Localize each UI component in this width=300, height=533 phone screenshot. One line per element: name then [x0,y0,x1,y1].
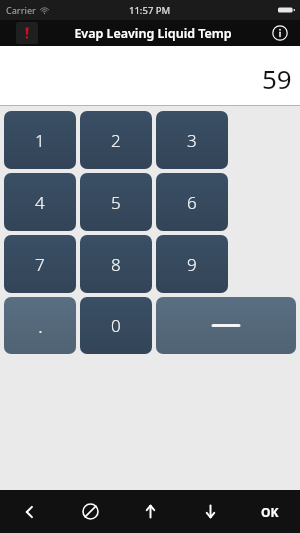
button[interactable]: Next [180,490,240,533]
staticText: 0 [111,314,121,337]
button[interactable]: 3 [156,111,228,169]
staticText: 5 [111,191,121,214]
button[interactable]: Info [268,21,292,45]
button[interactable]: 8 [80,235,152,293]
staticText: 11:57 PM [129,4,171,17]
button[interactable]: 0 [80,297,152,354]
button[interactable]: 6 [156,173,228,231]
button[interactable]: 9 [156,235,228,293]
button[interactable]: Previous [120,490,180,533]
button[interactable]: 5 [80,173,152,231]
staticText: . [38,312,43,339]
button[interactable]: Minus [156,297,296,354]
staticText: Carrier [6,4,36,16]
button[interactable]: 7 [4,235,76,293]
button[interactable]: 59 [0,46,300,105]
button[interactable]: OK [240,490,300,533]
staticText: 9 [187,253,197,276]
staticText: 8 [111,253,121,276]
button[interactable]: 2 [80,111,152,169]
button[interactable]: Decimal point [4,297,76,354]
staticText: Evap Leaving Liquid Temp [74,25,232,42]
staticText: 1 [35,129,45,152]
staticText: 7 [35,253,45,276]
button[interactable]: Alarm [16,22,38,44]
staticText: 3 [187,129,197,152]
button[interactable]: 1 [4,111,76,169]
staticText: 59 [262,61,292,96]
button[interactable]: 4 [4,173,76,231]
staticText: OK [261,504,279,520]
staticText: 2 [111,129,121,152]
button[interactable]: Cancel [60,490,120,533]
button[interactable]: Back [0,490,60,533]
staticText: 6 [187,191,197,214]
staticText: 4 [35,191,45,214]
